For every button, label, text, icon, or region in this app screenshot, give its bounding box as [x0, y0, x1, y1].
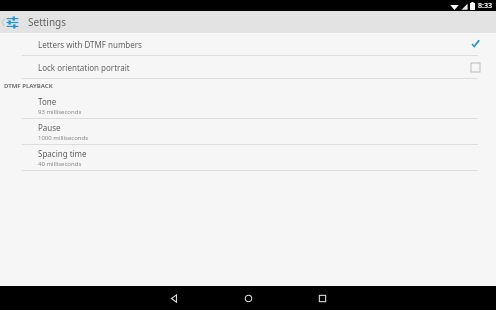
staticText: DTMF PLAYBACK [4, 82, 53, 90]
button[interactable]: Tone [0, 93, 496, 118]
button[interactable]: Disabled [468, 60, 482, 74]
button[interactable]: Enabled [468, 37, 482, 51]
staticText: 93 milliseconds [38, 108, 82, 116]
button[interactable]: Spacing time [0, 145, 496, 170]
button[interactable]: Back [152, 286, 196, 310]
staticText: 8:33 [478, 1, 492, 11]
staticText: 1000 milliseconds [38, 134, 89, 142]
staticText: Letters with DTMF numbers [38, 39, 468, 50]
button[interactable]: Pause [0, 119, 496, 144]
staticText: 40 milliseconds [38, 160, 82, 168]
button[interactable]: Recent apps [300, 286, 344, 310]
button[interactable]: Navigate up [0, 11, 20, 33]
staticText: Pause [38, 122, 61, 133]
staticText: Spacing time [38, 148, 87, 159]
staticText: Lock orientation portrait [38, 62, 468, 73]
staticText: Settings [28, 15, 67, 29]
button[interactable]: Home [226, 286, 270, 310]
staticText: Tone [38, 96, 57, 107]
button[interactable]: Letters with DTMF numbers [0, 33, 496, 55]
button[interactable]: Lock orientation portrait [0, 56, 496, 78]
